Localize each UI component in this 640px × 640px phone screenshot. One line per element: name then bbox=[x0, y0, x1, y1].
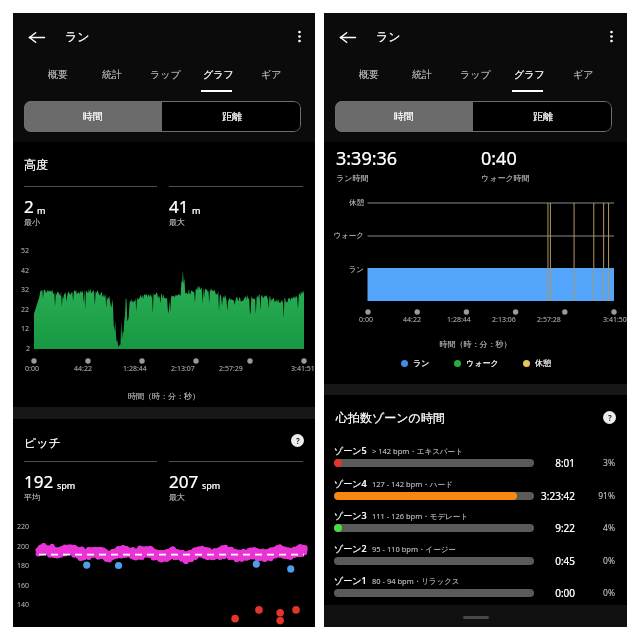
button[interactable]: グラフ bbox=[192, 60, 245, 88]
staticText: 最小 bbox=[24, 217, 40, 227]
staticText: 2:57:29 bbox=[219, 364, 243, 374]
staticText: 140 bbox=[17, 600, 30, 610]
staticText: ラン bbox=[324, 265, 364, 274]
button[interactable]: ラップ bbox=[448, 60, 502, 88]
staticText: ラン bbox=[413, 358, 430, 368]
staticText: ウォーク bbox=[324, 231, 364, 240]
button[interactable]: ゾーン4 bbox=[324, 473, 627, 505]
button[interactable]: More options bbox=[594, 19, 628, 53]
staticText: ラン時間 bbox=[336, 173, 369, 183]
staticText: 時間 bbox=[83, 110, 103, 123]
staticText: 時間（時：分：秒） bbox=[13, 391, 315, 401]
staticText: 207 bbox=[169, 470, 199, 493]
button[interactable]: グラフ bbox=[502, 60, 556, 88]
staticText: 0% bbox=[579, 587, 615, 599]
staticText: ゾーン3 bbox=[334, 509, 367, 521]
staticText: 1:28:44 bbox=[447, 315, 471, 325]
staticText: 概要 bbox=[48, 68, 68, 81]
staticText: 2 bbox=[24, 195, 34, 218]
button[interactable]: 統計 bbox=[85, 60, 139, 88]
staticText: 32 bbox=[21, 285, 30, 295]
staticText: 距離 bbox=[533, 110, 553, 123]
button[interactable]: 距離 bbox=[162, 101, 301, 132]
staticText: ゾーン1 bbox=[334, 574, 367, 586]
staticText: グラフ bbox=[203, 68, 234, 81]
button[interactable]: 概要 bbox=[342, 60, 395, 88]
staticText: 概要 bbox=[359, 68, 379, 81]
staticText: 127 - 142 bpm・ハード bbox=[372, 479, 453, 489]
staticText: 111 - 126 bpm・モデレート bbox=[372, 511, 468, 521]
staticText: 3:41:51 bbox=[291, 364, 315, 374]
button[interactable]: Back bbox=[325, 15, 369, 59]
staticText: spm bbox=[57, 479, 76, 491]
staticText: 休憩 bbox=[324, 198, 364, 207]
staticText: ウォーク bbox=[466, 358, 499, 368]
staticText: ウォーク時間 bbox=[481, 173, 530, 183]
staticText: 95 - 110 bpm・イージー bbox=[372, 544, 456, 554]
staticText: 41 bbox=[169, 195, 189, 218]
button[interactable]: Back bbox=[14, 15, 58, 59]
staticText: 91% bbox=[579, 490, 615, 502]
button[interactable]: ゾーン3 bbox=[324, 505, 627, 537]
staticText: 最大 bbox=[169, 492, 185, 502]
staticText: 高度 bbox=[24, 157, 48, 172]
staticText: 0:45 bbox=[529, 554, 575, 568]
staticText: ラン bbox=[376, 29, 401, 44]
staticText: m bbox=[192, 204, 201, 216]
staticText: グラフ bbox=[514, 68, 545, 81]
staticText: 12 bbox=[21, 324, 30, 334]
button[interactable]: ゾーン5 bbox=[324, 440, 627, 472]
button[interactable]: 時間 bbox=[335, 101, 473, 132]
button[interactable]: ギア bbox=[556, 60, 610, 88]
staticText: 時間（時：分：秒） bbox=[324, 339, 627, 349]
staticText: ゾーン4 bbox=[334, 477, 367, 489]
button[interactable]: ゾーン2 bbox=[324, 538, 627, 570]
staticText: > 142 bpm・エキスパート bbox=[372, 446, 463, 456]
staticText: ラン bbox=[65, 29, 90, 44]
button[interactable]: 統計 bbox=[395, 60, 448, 88]
button[interactable]: More options bbox=[282, 19, 316, 53]
button[interactable]: ゾーン1 bbox=[324, 570, 627, 602]
staticText: 44:22 bbox=[74, 364, 92, 374]
staticText: ? bbox=[608, 412, 612, 423]
staticText: spm bbox=[202, 479, 221, 491]
staticText: 統計 bbox=[412, 68, 432, 81]
staticText: 3:39:36 bbox=[336, 146, 398, 171]
staticText: 時間 bbox=[394, 110, 414, 123]
staticText: 44:22 bbox=[403, 315, 421, 325]
staticText: 休憩 bbox=[535, 358, 551, 368]
staticText: ギア bbox=[261, 68, 282, 81]
staticText: 距離 bbox=[222, 110, 242, 123]
button[interactable]: ラップ bbox=[139, 60, 192, 88]
staticText: ピッチ bbox=[24, 435, 61, 450]
staticText: 2:13:06 bbox=[492, 315, 516, 325]
staticText: ラップ bbox=[150, 68, 181, 81]
staticText: 220 bbox=[17, 522, 30, 532]
staticText: ゾーン2 bbox=[334, 542, 367, 554]
staticText: ? bbox=[296, 435, 300, 446]
staticText: 最大 bbox=[169, 217, 185, 227]
button[interactable]: Help bbox=[291, 434, 304, 447]
staticText: 8:01 bbox=[529, 456, 575, 470]
button[interactable]: ギア bbox=[245, 60, 298, 88]
staticText: 9:22 bbox=[529, 521, 575, 535]
staticText: 42 bbox=[21, 266, 30, 276]
staticText: 心拍数ゾーンの時間 bbox=[336, 410, 445, 425]
staticText: 1:28:44 bbox=[123, 364, 147, 374]
staticText: 22 bbox=[21, 305, 30, 315]
button[interactable]: 距離 bbox=[473, 101, 612, 132]
staticText: 統計 bbox=[102, 68, 122, 81]
button[interactable]: Help bbox=[603, 411, 616, 424]
staticText: 平均 bbox=[24, 492, 40, 502]
button[interactable]: 概要 bbox=[31, 60, 85, 88]
staticText: 180 bbox=[17, 561, 30, 571]
staticText: 2:13:07 bbox=[171, 364, 195, 374]
staticText: 192 bbox=[24, 470, 54, 493]
staticText: 200 bbox=[17, 542, 30, 552]
staticText: 3:23:42 bbox=[529, 489, 575, 503]
staticText: 0:00 bbox=[25, 364, 39, 374]
button[interactable]: 時間 bbox=[24, 101, 162, 132]
staticText: 0:00 bbox=[359, 315, 373, 325]
staticText: ギア bbox=[573, 68, 594, 81]
staticText: m bbox=[37, 204, 46, 216]
